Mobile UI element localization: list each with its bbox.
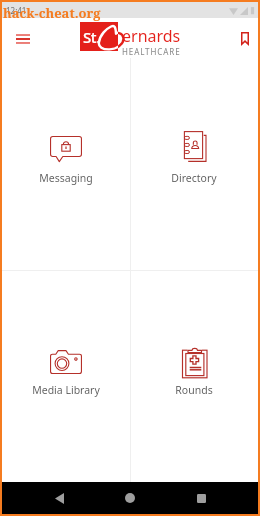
button[interactable]: Messaging — [2, 58, 130, 270]
staticText: Directory — [171, 171, 217, 185]
button[interactable]: Home — [114, 482, 146, 514]
staticText: Media Library — [32, 383, 100, 397]
staticText: hack-cheat.org — [3, 4, 101, 22]
staticText: Messaging — [39, 171, 93, 185]
button[interactable]: Back — [43, 482, 75, 514]
staticText: 12:41 — [6, 5, 27, 16]
button[interactable]: Bookmarks — [231, 25, 258, 52]
button[interactable]: Open navigation menu — [8, 24, 37, 53]
button[interactable]: Media Library — [2, 270, 130, 482]
button[interactable]: Rounds — [130, 270, 258, 482]
button[interactable]: Directory — [130, 58, 258, 270]
staticText: Rounds — [175, 383, 213, 397]
staticText: HEALTHCARE — [122, 46, 181, 55]
staticText: ernards — [122, 25, 181, 47]
staticText: St. — [83, 27, 100, 47]
button[interactable]: Recent apps — [185, 482, 217, 514]
